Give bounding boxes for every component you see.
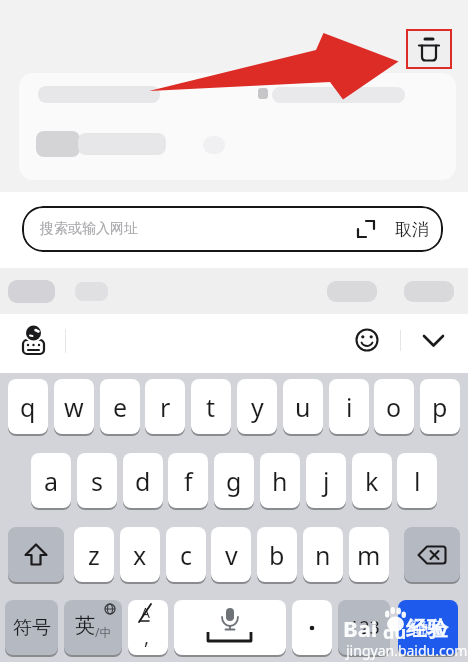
button[interactable]: 搜索或输入网址 [22,206,443,252]
button[interactable]: g [214,453,254,508]
staticText: c [180,538,193,572]
staticText: 符号 [13,616,51,640]
staticText: j [323,464,330,498]
staticText: x [133,538,147,572]
button[interactable]: o [374,379,414,434]
staticText: o [386,390,402,424]
button[interactable]: q [8,379,48,434]
staticText: f [184,464,193,498]
staticText: z [88,538,100,572]
button[interactable]: d [123,453,163,508]
staticText: n [315,538,331,572]
button[interactable]: f [168,453,208,508]
button[interactable]: n [303,527,343,582]
staticText: e [113,390,128,424]
staticText: du [383,620,407,645]
button[interactable]: j [306,453,346,508]
button[interactable]: A [128,600,168,655]
staticText: 取消 [395,219,429,240]
button[interactable]: u [283,379,323,434]
staticText: A [141,603,150,622]
button[interactable]: w [54,379,94,434]
button[interactable] [404,527,460,582]
staticText: w [64,390,84,424]
button[interactable] [352,325,382,355]
staticText: u [295,390,311,424]
button[interactable] [8,527,64,582]
button[interactable] [292,600,332,655]
staticText: jingyan.baidu.com [346,641,468,660]
button[interactable]: y [237,379,277,434]
staticText: p [432,390,448,424]
staticText: d [135,464,151,498]
staticText: b [269,538,285,572]
staticText: y [251,390,264,424]
staticText: 123 [349,615,380,640]
button[interactable]: 英 [64,600,122,655]
staticText: 确定 [411,617,445,638]
button[interactable]: i [329,379,369,434]
button[interactable]: 确定 [398,600,458,655]
button[interactable]: s [77,453,117,508]
staticText: a [44,464,59,498]
button[interactable]: z [74,527,114,582]
staticText: , [144,624,150,650]
button[interactable] [418,326,448,354]
button[interactable] [174,600,286,655]
button[interactable] [406,29,452,69]
button[interactable]: a [31,453,71,508]
button[interactable]: 取消 [395,219,429,240]
staticText: v [225,538,238,572]
staticText: r [160,390,171,424]
button[interactable] [18,322,50,358]
button[interactable]: r [145,379,185,434]
staticText: t [206,390,216,424]
button[interactable]: b [257,527,297,582]
button[interactable]: t [191,379,231,434]
button[interactable]: v [211,527,251,582]
staticText: l [414,464,421,498]
staticText: q [20,390,36,424]
staticText: k [365,464,379,498]
button[interactable]: h [260,453,300,508]
staticText: /中 [95,624,112,640]
button[interactable]: l [397,453,437,508]
button[interactable]: e [100,379,140,434]
button[interactable]: 符号 [5,600,58,655]
button[interactable]: c [166,527,206,582]
staticText: Bai [343,613,378,643]
staticText: h [272,464,288,498]
button[interactable]: x [120,527,160,582]
staticText: 搜索或输入网址 [40,220,138,238]
button[interactable]: 123 [338,600,390,655]
button[interactable]: p [420,379,460,434]
staticText: 经验 [406,616,448,642]
button[interactable]: m [349,527,389,582]
staticText: i [346,390,353,424]
staticText: s [91,464,103,498]
staticText: m [357,538,381,572]
button[interactable]: k [352,453,392,508]
staticText: g [226,464,242,498]
staticText: 英 [75,613,95,638]
